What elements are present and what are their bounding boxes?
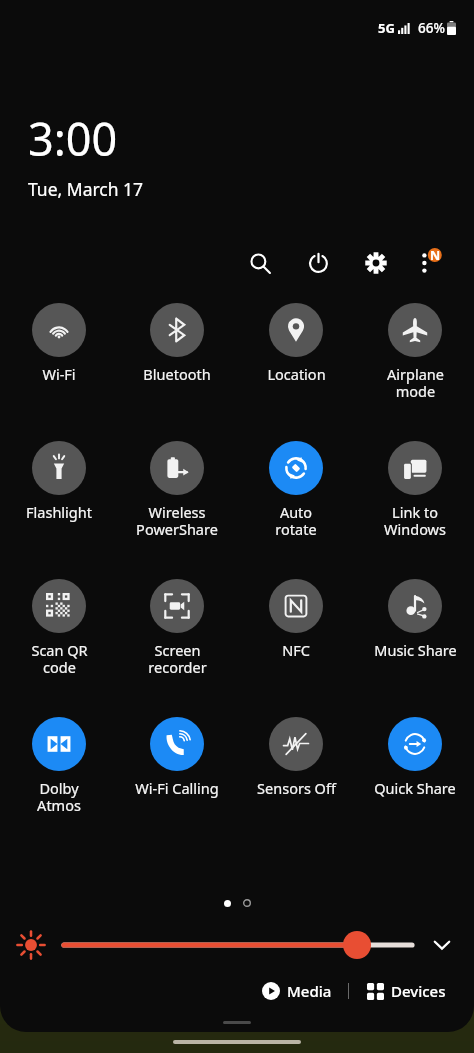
staticText: Auto rotate bbox=[275, 502, 317, 539]
staticText: Location bbox=[267, 364, 326, 384]
button[interactable]: Wi-Fi Calling bbox=[123, 715, 231, 798]
staticText: Sensors Off bbox=[257, 778, 336, 798]
staticText: Music Share bbox=[374, 640, 457, 660]
button[interactable]: Wi-Fi bbox=[5, 301, 113, 384]
staticText: Wi-Fi Calling bbox=[135, 778, 219, 798]
button[interactable]: Dolby Atmos bbox=[5, 715, 113, 815]
button[interactable]: Music Share bbox=[361, 577, 469, 660]
staticText: Airplane mode bbox=[387, 364, 444, 401]
staticText: Quick Share bbox=[374, 778, 456, 798]
staticText: Media bbox=[287, 981, 332, 1001]
button[interactable]: Screen recorder bbox=[123, 577, 231, 677]
staticText: Flashlight bbox=[26, 502, 92, 522]
button[interactable]: Airplane mode bbox=[361, 301, 469, 401]
button[interactable]: Scan QR code bbox=[5, 577, 113, 677]
staticText: NFC bbox=[282, 640, 310, 660]
staticText: Dolby Atmos bbox=[37, 778, 81, 815]
staticText: Wi-Fi bbox=[42, 364, 76, 384]
button[interactable]: Expand brightness settings bbox=[424, 927, 460, 963]
button[interactable]: Brightness bbox=[64, 925, 412, 965]
staticText: Link to Windows bbox=[384, 502, 446, 539]
button[interactable]: NFC bbox=[242, 577, 350, 660]
staticText: 3:00 bbox=[28, 108, 118, 169]
button[interactable]: Power off bbox=[298, 243, 338, 283]
staticText: 5G bbox=[378, 19, 395, 37]
button[interactable]: Media bbox=[256, 975, 338, 1007]
staticText: N bbox=[430, 247, 441, 264]
button[interactable]: Wireless PowerShare bbox=[123, 439, 231, 539]
button[interactable]: Location bbox=[242, 301, 350, 384]
button[interactable]: Quick Share bbox=[361, 715, 469, 798]
button[interactable]: Link to Windows bbox=[361, 439, 469, 539]
button[interactable]: Devices bbox=[361, 975, 452, 1007]
button[interactable]: More options bbox=[410, 243, 450, 283]
staticText: Wireless PowerShare bbox=[136, 502, 218, 539]
staticText: Tue, March 17 bbox=[28, 177, 144, 201]
button[interactable]: Auto rotate bbox=[242, 439, 350, 539]
staticText: 66% bbox=[418, 19, 445, 37]
staticText: Scan QR code bbox=[31, 640, 88, 677]
staticText: Screen recorder bbox=[148, 640, 207, 677]
button[interactable]: Sensors Off bbox=[242, 715, 350, 798]
button[interactable]: Flashlight bbox=[5, 439, 113, 522]
button[interactable]: Search bbox=[240, 243, 280, 283]
staticText: Bluetooth bbox=[143, 364, 211, 384]
button[interactable]: Settings bbox=[356, 243, 396, 283]
button[interactable]: Bluetooth bbox=[123, 301, 231, 384]
staticText: Devices bbox=[391, 981, 446, 1001]
